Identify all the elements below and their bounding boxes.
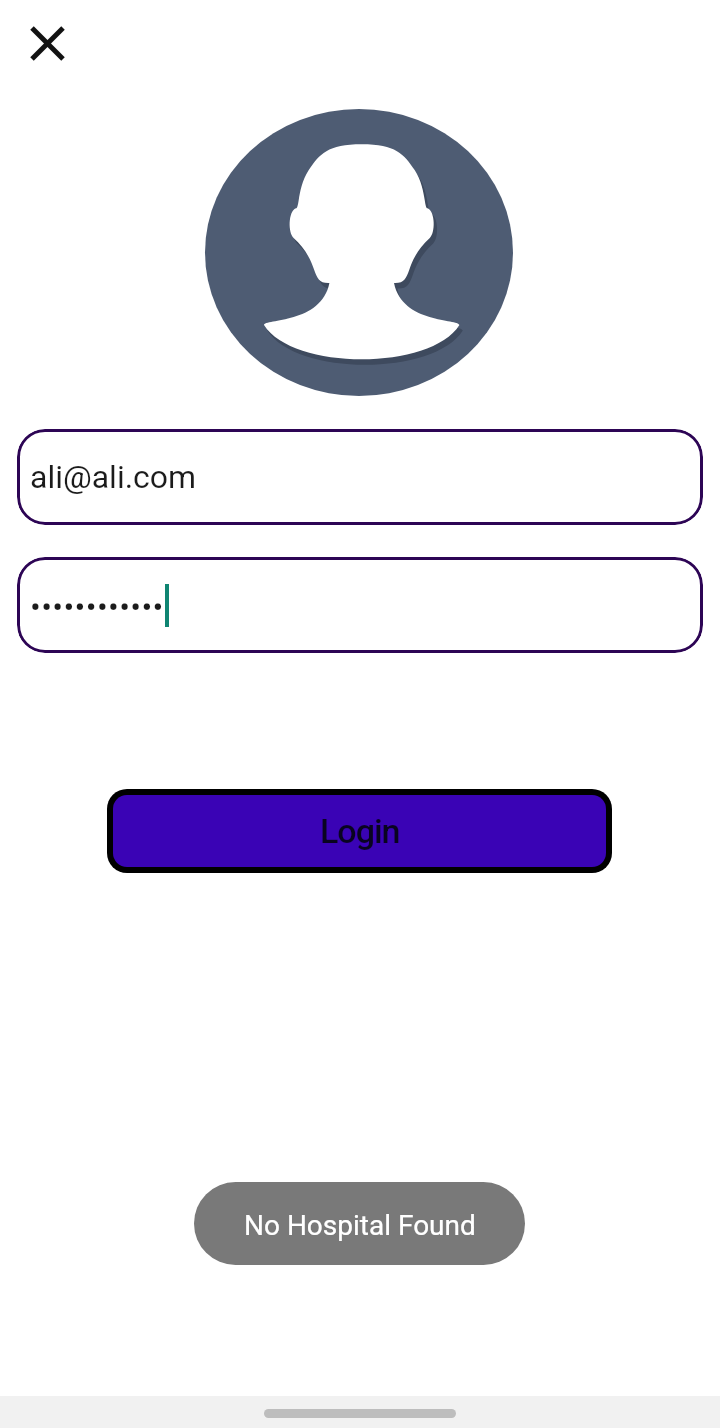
- button[interactable]: Login: [113, 795, 606, 867]
- staticText: No Hospital Found: [244, 1209, 476, 1242]
- button[interactable]: ••••••••••••: [17, 557, 703, 653]
- staticText: Login: [320, 811, 400, 851]
- staticText: ••••••••••••: [30, 588, 164, 626]
- button[interactable]: Close: [18, 14, 76, 72]
- button[interactable]: ali@ali.com: [17, 429, 703, 525]
- staticText: ali@ali.com: [30, 458, 197, 496]
